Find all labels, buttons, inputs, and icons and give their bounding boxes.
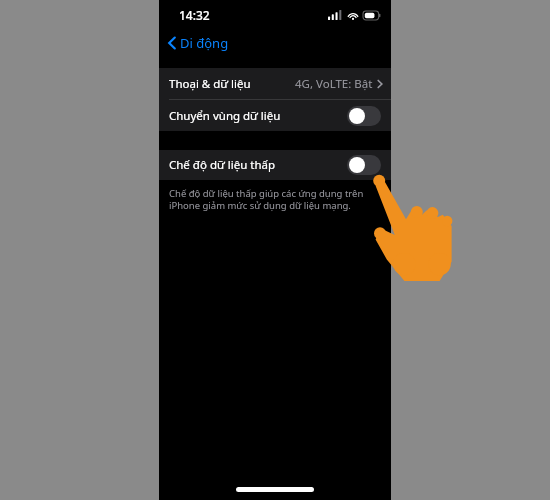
button[interactable]: Chế độ dữ liệu thấp: [159, 150, 391, 180]
button[interactable]: Di động: [159, 30, 391, 56]
staticText: 14:32: [179, 7, 210, 23]
button[interactable]: Toggle: [347, 106, 381, 126]
button[interactable]: Toggle: [347, 155, 381, 175]
staticText: Chuyển vùng dữ liệu: [169, 108, 281, 124]
staticText: Chế độ dữ liệu thấp giúp các ứng dụng tr…: [169, 187, 379, 212]
staticText: Di động: [180, 34, 229, 52]
button[interactable]: Chuyển vùng dữ liệu: [159, 100, 391, 131]
staticText: 4G, VoLTE: Bật: [295, 76, 373, 92]
staticText: Chế độ dữ liệu thấp: [169, 157, 276, 173]
button[interactable]: Thoại & dữ liệu: [159, 68, 391, 99]
staticText: Thoại & dữ liệu: [169, 76, 251, 92]
